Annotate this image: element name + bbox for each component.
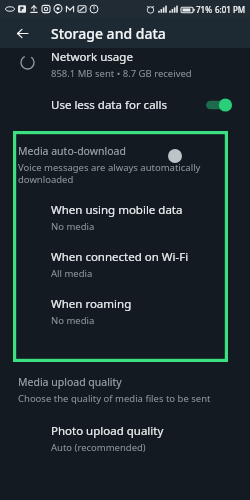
button[interactable]: When using mobile data — [13, 202, 228, 233]
staticText: When using mobile data — [51, 202, 183, 218]
staticText: No media — [51, 314, 95, 327]
button[interactable]: Use less data for calls toggle — [206, 98, 232, 112]
staticText: Use less data for calls — [51, 97, 168, 113]
button[interactable]: When roaming — [13, 296, 228, 327]
staticText: All media — [51, 267, 93, 280]
button[interactable]: When connected on Wi-Fi — [13, 249, 228, 280]
staticText: When connected on Wi-Fi — [51, 249, 189, 265]
staticText: Network usage — [51, 49, 133, 65]
staticText: Photo upload quality — [51, 423, 164, 439]
staticText: Choose the quality of media files to be … — [18, 392, 211, 405]
staticText: When roaming — [51, 296, 132, 312]
button[interactable]: Use less data for calls — [0, 90, 250, 120]
staticText: Voice messages are always automatically … — [18, 161, 201, 186]
button[interactable]: Back — [10, 21, 34, 45]
staticText: Media auto-download — [18, 144, 126, 158]
button[interactable]: Network usage — [0, 48, 250, 90]
staticText: Media upload quality — [18, 375, 122, 389]
staticText: No media — [51, 220, 95, 233]
staticText: 858.1 MB sent • 8.7 GB received — [51, 67, 192, 80]
staticText: 71% — [196, 4, 212, 15]
staticText: Storage and data — [51, 24, 166, 43]
staticText: Auto (recommended) — [51, 441, 146, 454]
button[interactable]: Photo upload quality — [0, 423, 250, 454]
staticText: 6:01 PM — [215, 4, 246, 15]
